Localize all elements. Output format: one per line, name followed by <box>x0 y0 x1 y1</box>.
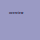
staticText: Overview <box>9 11 23 15</box>
